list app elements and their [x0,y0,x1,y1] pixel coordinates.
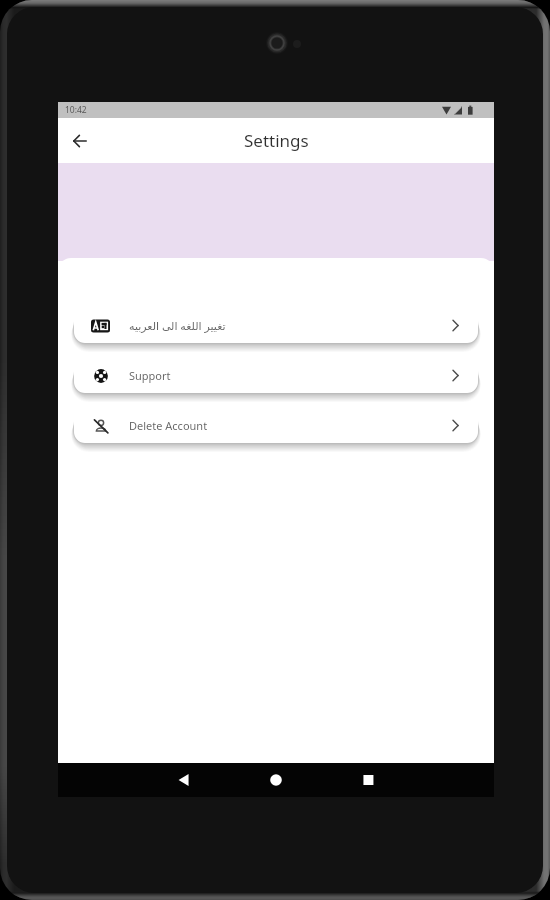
button[interactable]: Support [74,358,478,393]
staticText: Settings [244,129,309,152]
staticText: Delete Account [129,418,208,433]
button[interactable]: Back [64,125,96,157]
staticText: Support [129,368,171,383]
button[interactable]: Delete Account [74,408,478,443]
staticText: تغيير اللغه الى العربيه [129,318,226,333]
button[interactable]: تغيير اللغه الى العربيه [74,308,478,343]
staticText: 10:42 [65,104,87,116]
